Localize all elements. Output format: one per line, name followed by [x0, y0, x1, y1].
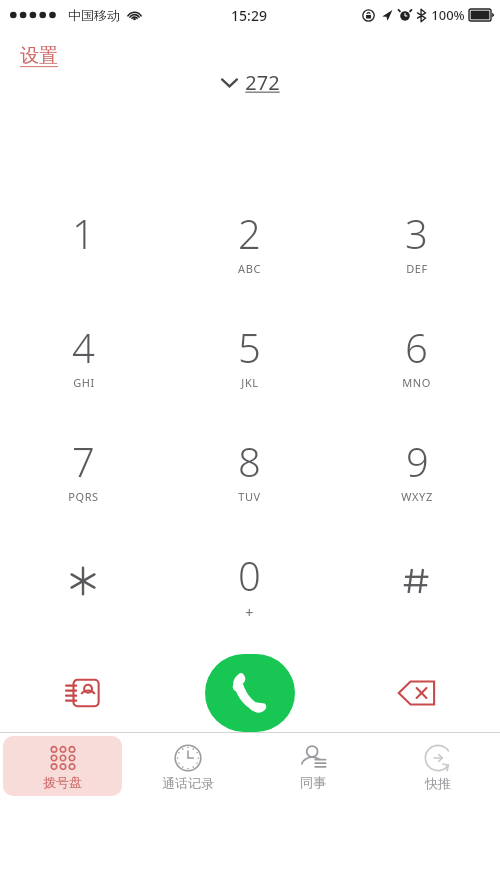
staticText: 设置 [20, 44, 58, 68]
staticText: 1 [72, 206, 95, 260]
button[interactable] [333, 548, 500, 648]
button[interactable]: Call [205, 654, 295, 732]
button[interactable] [0, 548, 166, 648]
staticText: 2 [238, 206, 261, 260]
button[interactable]: Delete [392, 668, 442, 718]
staticText: + [245, 603, 254, 622]
button[interactable]: 设置 [16, 42, 62, 70]
staticText: 9 [406, 434, 429, 488]
button[interactable]: 0 [166, 548, 333, 648]
staticText: TUV [238, 489, 261, 504]
button[interactable]: 快推 [378, 736, 497, 796]
staticText: 7 [72, 434, 95, 488]
button[interactable]: 拨号盘 [3, 736, 122, 796]
staticText: 272 [245, 69, 280, 96]
button[interactable]: Contacts [58, 668, 108, 718]
staticText: 15:29 [231, 6, 267, 25]
button[interactable]: 2 [166, 206, 333, 320]
staticText: 3 [405, 206, 428, 260]
staticText: PQRS [68, 489, 99, 504]
staticText: GHI [73, 375, 95, 390]
button[interactable]: 1 [0, 206, 166, 320]
staticText: 100% [431, 6, 465, 24]
button[interactable]: 9 [333, 434, 500, 548]
button[interactable]: 3 [333, 206, 500, 320]
button[interactable]: 同事 [253, 736, 372, 796]
staticText: 4 [72, 320, 95, 374]
staticText: WXYZ [401, 489, 433, 504]
staticText: 5 [238, 320, 261, 374]
button[interactable]: 8 [166, 434, 333, 548]
staticText: JKL [241, 375, 259, 390]
button[interactable]: 5 [166, 320, 333, 434]
staticText: DEF [406, 261, 428, 276]
staticText: 拨号盘 [43, 774, 82, 790]
button[interactable]: 通话记录 [128, 736, 247, 796]
staticText: MNO [402, 375, 431, 390]
staticText: 中国移动 [68, 7, 120, 23]
staticText: 同事 [300, 774, 326, 790]
staticText: 6 [405, 320, 428, 374]
button[interactable]: 272 [215, 66, 286, 99]
staticText: 0 [238, 548, 261, 602]
staticText: 8 [238, 434, 261, 488]
staticText: 快推 [425, 775, 451, 791]
button[interactable]: 4 [0, 320, 166, 434]
button[interactable]: 7 [0, 434, 166, 548]
staticText: 通话记录 [162, 775, 214, 791]
staticText: ABC [238, 261, 261, 276]
button[interactable]: 6 [333, 320, 500, 434]
